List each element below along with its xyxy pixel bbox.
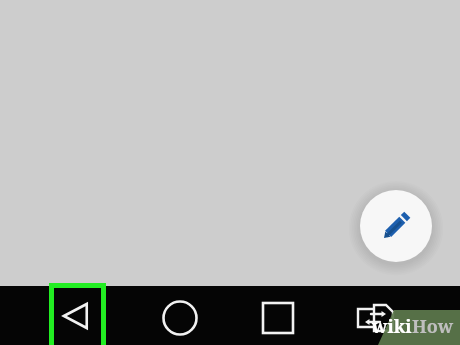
- staticText: wiki: [372, 314, 412, 339]
- staticText: How: [412, 314, 454, 339]
- button[interactable]: Switch apps: [352, 294, 400, 342]
- button[interactable]: Compose: [358, 188, 434, 264]
- button[interactable]: Back: [49, 283, 106, 345]
- button[interactable]: Home: [156, 294, 204, 342]
- button[interactable]: Recent apps: [254, 294, 302, 342]
